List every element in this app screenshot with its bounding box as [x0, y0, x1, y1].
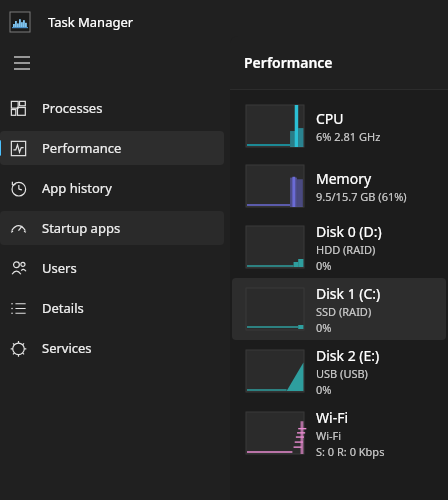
button[interactable]: Processes: [0, 91, 224, 125]
staticText: 0%: [316, 320, 332, 335]
button[interactable]: Startup apps: [0, 211, 224, 245]
staticText: S: 0 R: 0 Kbps: [316, 444, 385, 459]
button[interactable]: Users: [0, 251, 224, 285]
staticText: Task Manager: [48, 13, 134, 31]
staticText: Disk 2 (E:): [316, 346, 380, 365]
staticText: Details: [42, 299, 84, 317]
button[interactable]: Disk 2 (E:): [232, 340, 446, 402]
button[interactable]: Disk 0 (D:): [232, 216, 446, 278]
button[interactable]: Disk 1 (C:): [232, 278, 446, 340]
staticText: Memory: [316, 169, 372, 188]
staticText: Processes: [42, 99, 103, 117]
button[interactable]: Details: [0, 291, 224, 325]
button[interactable]: App history: [0, 171, 224, 205]
staticText: 9.5/15.7 GB (61%): [316, 189, 407, 204]
staticText: Performance: [244, 53, 333, 72]
staticText: Startup apps: [42, 219, 121, 237]
staticText: Services: [42, 339, 92, 357]
button[interactable]: Wi-Fi: [232, 402, 446, 464]
staticText: SSD (RAID): [316, 304, 372, 319]
button[interactable]: Menu: [0, 44, 44, 82]
staticText: 0%: [316, 258, 332, 273]
staticText: Wi-Fi: [316, 408, 349, 427]
staticText: HDD (RAID): [316, 242, 376, 257]
button[interactable]: Performance: [0, 131, 224, 165]
staticText: 6% 2.81 GHz: [316, 129, 381, 144]
staticText: Performance: [42, 139, 122, 157]
staticText: CPU: [316, 109, 344, 128]
button[interactable]: CPU: [232, 96, 446, 156]
staticText: Wi-Fi: [316, 428, 342, 443]
staticText: App history: [42, 179, 112, 197]
staticText: Disk 0 (D:): [316, 222, 382, 241]
staticText: Disk 1 (C:): [316, 284, 381, 303]
staticText: 0%: [316, 382, 332, 397]
staticText: Users: [42, 259, 77, 277]
staticText: USB (USB): [316, 366, 368, 381]
button[interactable]: Services: [0, 331, 224, 365]
button[interactable]: Memory: [232, 156, 446, 216]
